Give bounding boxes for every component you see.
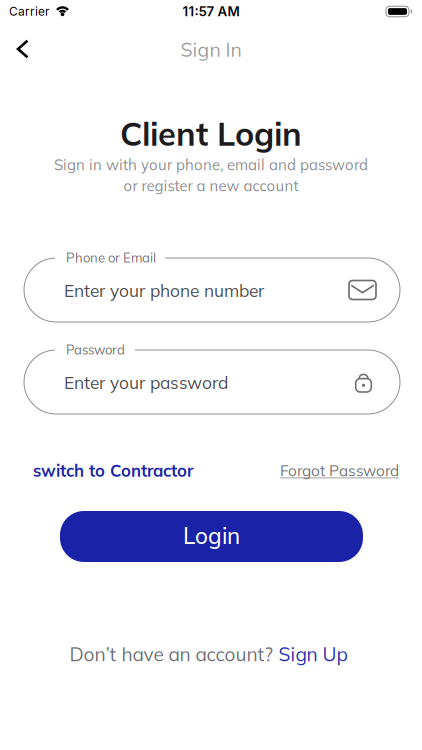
staticText: Sign Up (278, 642, 347, 666)
staticText: switch to Contractor (33, 460, 194, 481)
staticText: Sign In (180, 37, 241, 62)
staticText: Enter your password (64, 372, 228, 393)
staticText: Enter your phone number (64, 280, 264, 301)
staticText: Phone or Email (66, 249, 156, 266)
staticText: Sign in with your phone, email and passw… (54, 155, 368, 174)
button[interactable]: Phone or Email (0, 226, 422, 354)
staticText: Forgot Password (280, 461, 399, 480)
staticText: Client Login (120, 113, 302, 154)
staticText: Login (183, 521, 240, 549)
staticText: Don’t have an account? (69, 642, 273, 666)
button[interactable]: Login (60, 511, 363, 562)
staticText: Carrier (9, 4, 50, 19)
button[interactable]: Sign Up (278, 642, 347, 666)
button[interactable]: Forgot Password (280, 461, 399, 480)
button[interactable]: Back (5, 32, 39, 66)
staticText: 11:57 AM (182, 3, 239, 19)
staticText: or register a new account (123, 176, 298, 195)
button[interactable]: Password (0, 318, 422, 446)
staticText: Password (66, 341, 125, 358)
button[interactable]: switch to Contractor (33, 460, 194, 481)
